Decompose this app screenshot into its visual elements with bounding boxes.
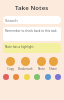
button[interactable]: Share: [49, 57, 58, 71]
button[interactable]: [13, 74, 19, 80]
button[interactable]: Remember to check back to this task: [3, 27, 61, 41]
button[interactable]: [55, 74, 61, 80]
button[interactable]: Note has a highlight: [3, 43, 61, 53]
button[interactable]: Copy: [6, 57, 15, 71]
button[interactable]: [3, 74, 9, 80]
button[interactable]: Search: [3, 16, 61, 24]
staticText: Take Notes: [15, 4, 49, 12]
button[interactable]: [34, 74, 40, 80]
button[interactable]: [24, 74, 30, 80]
button[interactable]: Note: [37, 57, 46, 71]
button[interactable]: Bookmark: [18, 57, 33, 71]
staticText: Share: [49, 67, 58, 71]
button[interactable]: [45, 74, 51, 80]
staticText: Search: [5, 18, 18, 23]
staticText: Bookmark: [18, 67, 33, 71]
staticText: Remember to check back to this task: [5, 29, 57, 33]
staticText: Copy: [7, 67, 15, 71]
staticText: Note has a highlight: [5, 45, 34, 49]
staticText: Note: [38, 67, 45, 71]
